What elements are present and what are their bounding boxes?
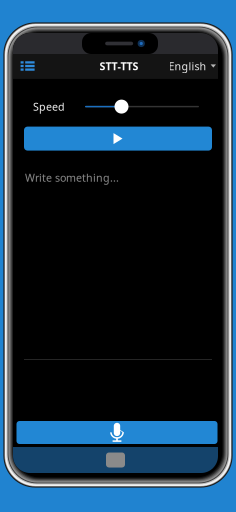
staticText: English bbox=[169, 59, 207, 73]
staticText: Write something... bbox=[25, 171, 119, 185]
button[interactable]: Menu bbox=[13, 54, 42, 78]
button[interactable]: English bbox=[169, 54, 218, 78]
button[interactable]: Record speech bbox=[16, 421, 217, 444]
staticText: Speed bbox=[33, 99, 65, 114]
staticText: STT-TTS bbox=[99, 59, 138, 73]
button[interactable]: Speak text bbox=[24, 127, 212, 151]
